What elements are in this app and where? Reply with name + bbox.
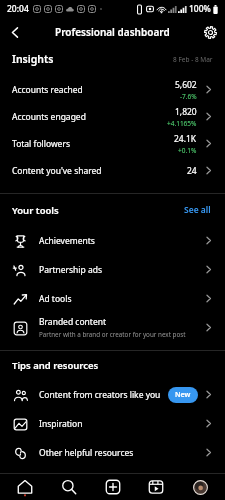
staticText: 24 — [187, 165, 197, 177]
button[interactable]: Settings — [195, 18, 225, 46]
staticText: 5,602 — [175, 79, 197, 91]
staticText: Your tools — [12, 204, 59, 217]
staticText: +4.1165% — [167, 119, 197, 128]
staticText: Partner with a brand or creator for your… — [39, 330, 186, 339]
staticText: 100% — [189, 3, 211, 15]
staticText: 24.1K — [174, 133, 197, 145]
staticText: Total followers — [12, 138, 70, 150]
button[interactable]: Ad tools — [0, 284, 225, 313]
staticText: Professional dashboard — [55, 25, 170, 39]
button[interactable]: See all — [182, 202, 213, 218]
staticText: Content from creators like you — [39, 389, 161, 401]
button[interactable]: Search — [50, 474, 88, 500]
staticText: Content you've shared — [12, 165, 102, 177]
staticText: +0.1% — [178, 146, 197, 155]
button[interactable]: Content you've shared — [0, 157, 225, 184]
button[interactable]: Accounts reached — [0, 76, 225, 103]
button[interactable]: Inspiration — [0, 409, 225, 438]
staticText: Inspiration — [39, 418, 83, 430]
button[interactable]: Reels — [137, 474, 175, 500]
staticText: -7.6% — [180, 92, 197, 101]
staticText: 8 Feb - 8 Mar — [173, 55, 213, 64]
staticText: Branded content — [39, 316, 107, 328]
button[interactable]: Back — [0, 18, 30, 46]
staticText: Achievements — [39, 235, 95, 247]
button[interactable]: Create — [94, 474, 132, 500]
staticText: Other helpful resources — [39, 447, 134, 459]
button[interactable]: Partnership ads — [0, 255, 225, 284]
staticText: New — [175, 390, 191, 400]
staticText: Insights — [12, 52, 54, 66]
staticText: Accounts engaged — [12, 111, 86, 123]
staticText: Accounts reached — [12, 84, 83, 96]
button[interactable]: Content from creators like you — [0, 380, 225, 409]
button[interactable]: Accounts engaged — [0, 103, 225, 130]
button[interactable]: Home — [6, 474, 44, 500]
button[interactable]: Branded content — [0, 313, 225, 342]
staticText: Tips and resources — [12, 359, 99, 372]
button[interactable]: Total followers — [0, 130, 225, 157]
staticText: Ad tools — [39, 293, 72, 305]
staticText: 1,820 — [175, 106, 197, 118]
staticText: 20:04 — [7, 3, 29, 15]
button[interactable]: Profile — [181, 474, 219, 500]
staticText: Partnership ads — [39, 264, 103, 276]
staticText: See all — [184, 204, 211, 216]
button[interactable]: Other helpful resources — [0, 438, 225, 467]
button[interactable]: Achievements — [0, 226, 225, 255]
